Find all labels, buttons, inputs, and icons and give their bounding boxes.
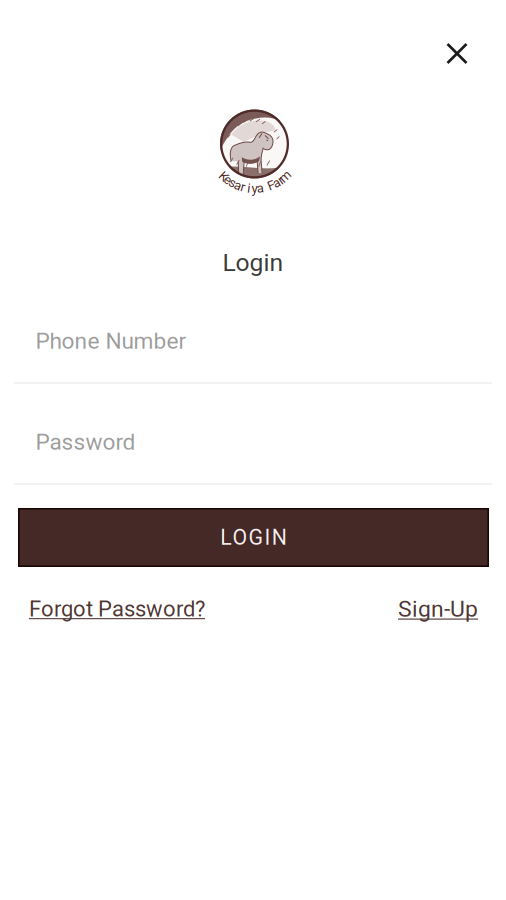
staticText: Sign-Up [398, 596, 478, 622]
staticText: y [251, 181, 257, 196]
staticText: a [234, 177, 241, 193]
staticText: s [229, 175, 236, 191]
button[interactable]: Forgot Password? [29, 596, 249, 622]
button[interactable]: Sign-Up [368, 596, 478, 622]
staticText: a [257, 180, 264, 196]
staticText: i [247, 180, 250, 196]
staticText: F [268, 177, 275, 193]
staticText: a [273, 175, 280, 191]
staticText: r [278, 172, 283, 188]
staticText: Login [222, 248, 283, 277]
staticText: r [241, 179, 246, 195]
staticText: Password [35, 429, 135, 455]
staticText: K [220, 168, 228, 184]
button[interactable]: LOGIN [18, 508, 489, 567]
staticText: Phone Number [35, 328, 186, 354]
staticText: LOGIN [220, 525, 287, 550]
staticText: m [279, 168, 291, 184]
staticText: e [224, 172, 231, 188]
staticText: Forgot Password? [29, 596, 205, 622]
button[interactable]: Close [434, 30, 480, 76]
